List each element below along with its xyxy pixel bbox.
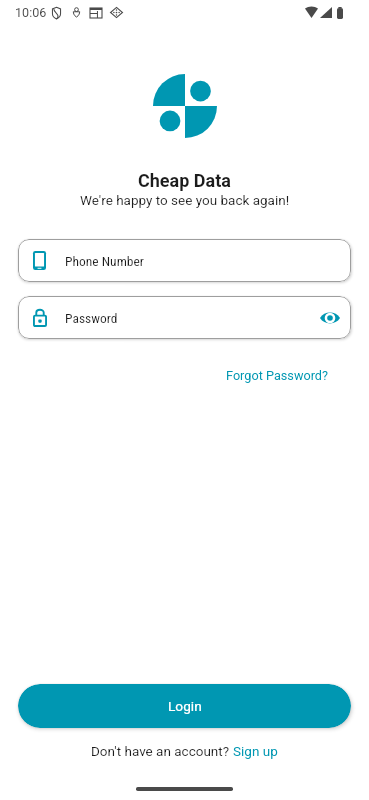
button[interactable]: Sign up xyxy=(233,743,278,759)
button[interactable]: Forgot Password? xyxy=(226,368,328,383)
staticText: Login xyxy=(168,698,202,714)
staticText: Don't have an account? xyxy=(91,743,233,759)
button[interactable]: Phone Number xyxy=(18,239,351,282)
staticText: We're happy to see you back again! xyxy=(80,192,290,208)
button[interactable]: Password xyxy=(18,296,351,339)
staticText: 10:06 xyxy=(15,5,47,20)
other: Privacy xyxy=(52,7,61,19)
other: Show password xyxy=(320,311,340,325)
button[interactable]: Login xyxy=(18,684,351,728)
staticText: Password xyxy=(65,310,118,326)
staticText: Phone Number xyxy=(65,253,144,269)
staticText: Cheap Data xyxy=(138,170,231,191)
